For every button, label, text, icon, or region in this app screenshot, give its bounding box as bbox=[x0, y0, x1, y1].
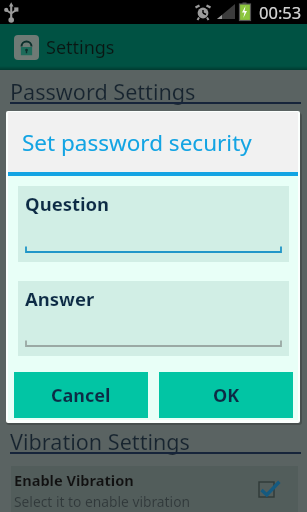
other: App icon bbox=[14, 35, 39, 60]
staticText: Select it to enable vibration bbox=[14, 492, 191, 511]
staticText: Settings bbox=[46, 35, 115, 60]
staticText: Enable Vibration bbox=[14, 470, 134, 490]
staticText: Password Settings bbox=[10, 77, 196, 106]
staticText: Set password security bbox=[22, 127, 252, 158]
staticText: Answer bbox=[25, 286, 95, 311]
staticText: Vibration Settings bbox=[10, 427, 190, 456]
button[interactable]: OK bbox=[159, 372, 293, 418]
staticText: OK bbox=[213, 383, 240, 408]
button[interactable]: Cancel bbox=[14, 372, 148, 418]
staticText: 00:53 bbox=[259, 1, 302, 23]
staticText: Cancel bbox=[51, 383, 111, 408]
staticText: Question bbox=[25, 191, 110, 216]
button[interactable]: Enable Vibration bbox=[11, 466, 298, 512]
button[interactable]: Enable vibration checkbox bbox=[258, 480, 280, 502]
